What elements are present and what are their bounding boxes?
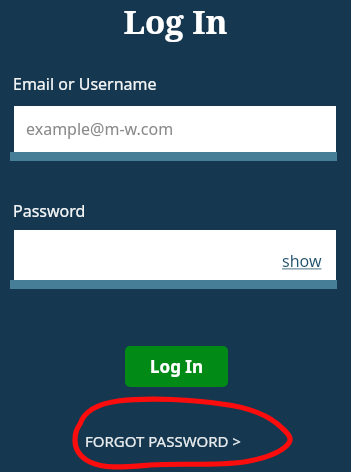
button[interactable]: show — [282, 250, 322, 272]
staticText: FORGOT PASSWORD > — [85, 431, 241, 451]
button[interactable]: FORGOT PASSWORD > — [85, 429, 266, 453]
staticText: Password — [13, 200, 86, 222]
button[interactable]: Log In — [125, 346, 228, 387]
button[interactable]: example@m-w.com — [14, 106, 336, 152]
staticText: example@m-w.com — [26, 118, 174, 140]
staticText: show — [282, 250, 322, 272]
staticText: Email or Username — [13, 73, 157, 95]
staticText: Log In — [0, 0, 351, 44]
staticText: Log In — [150, 355, 203, 378]
button[interactable]: show — [14, 230, 336, 280]
